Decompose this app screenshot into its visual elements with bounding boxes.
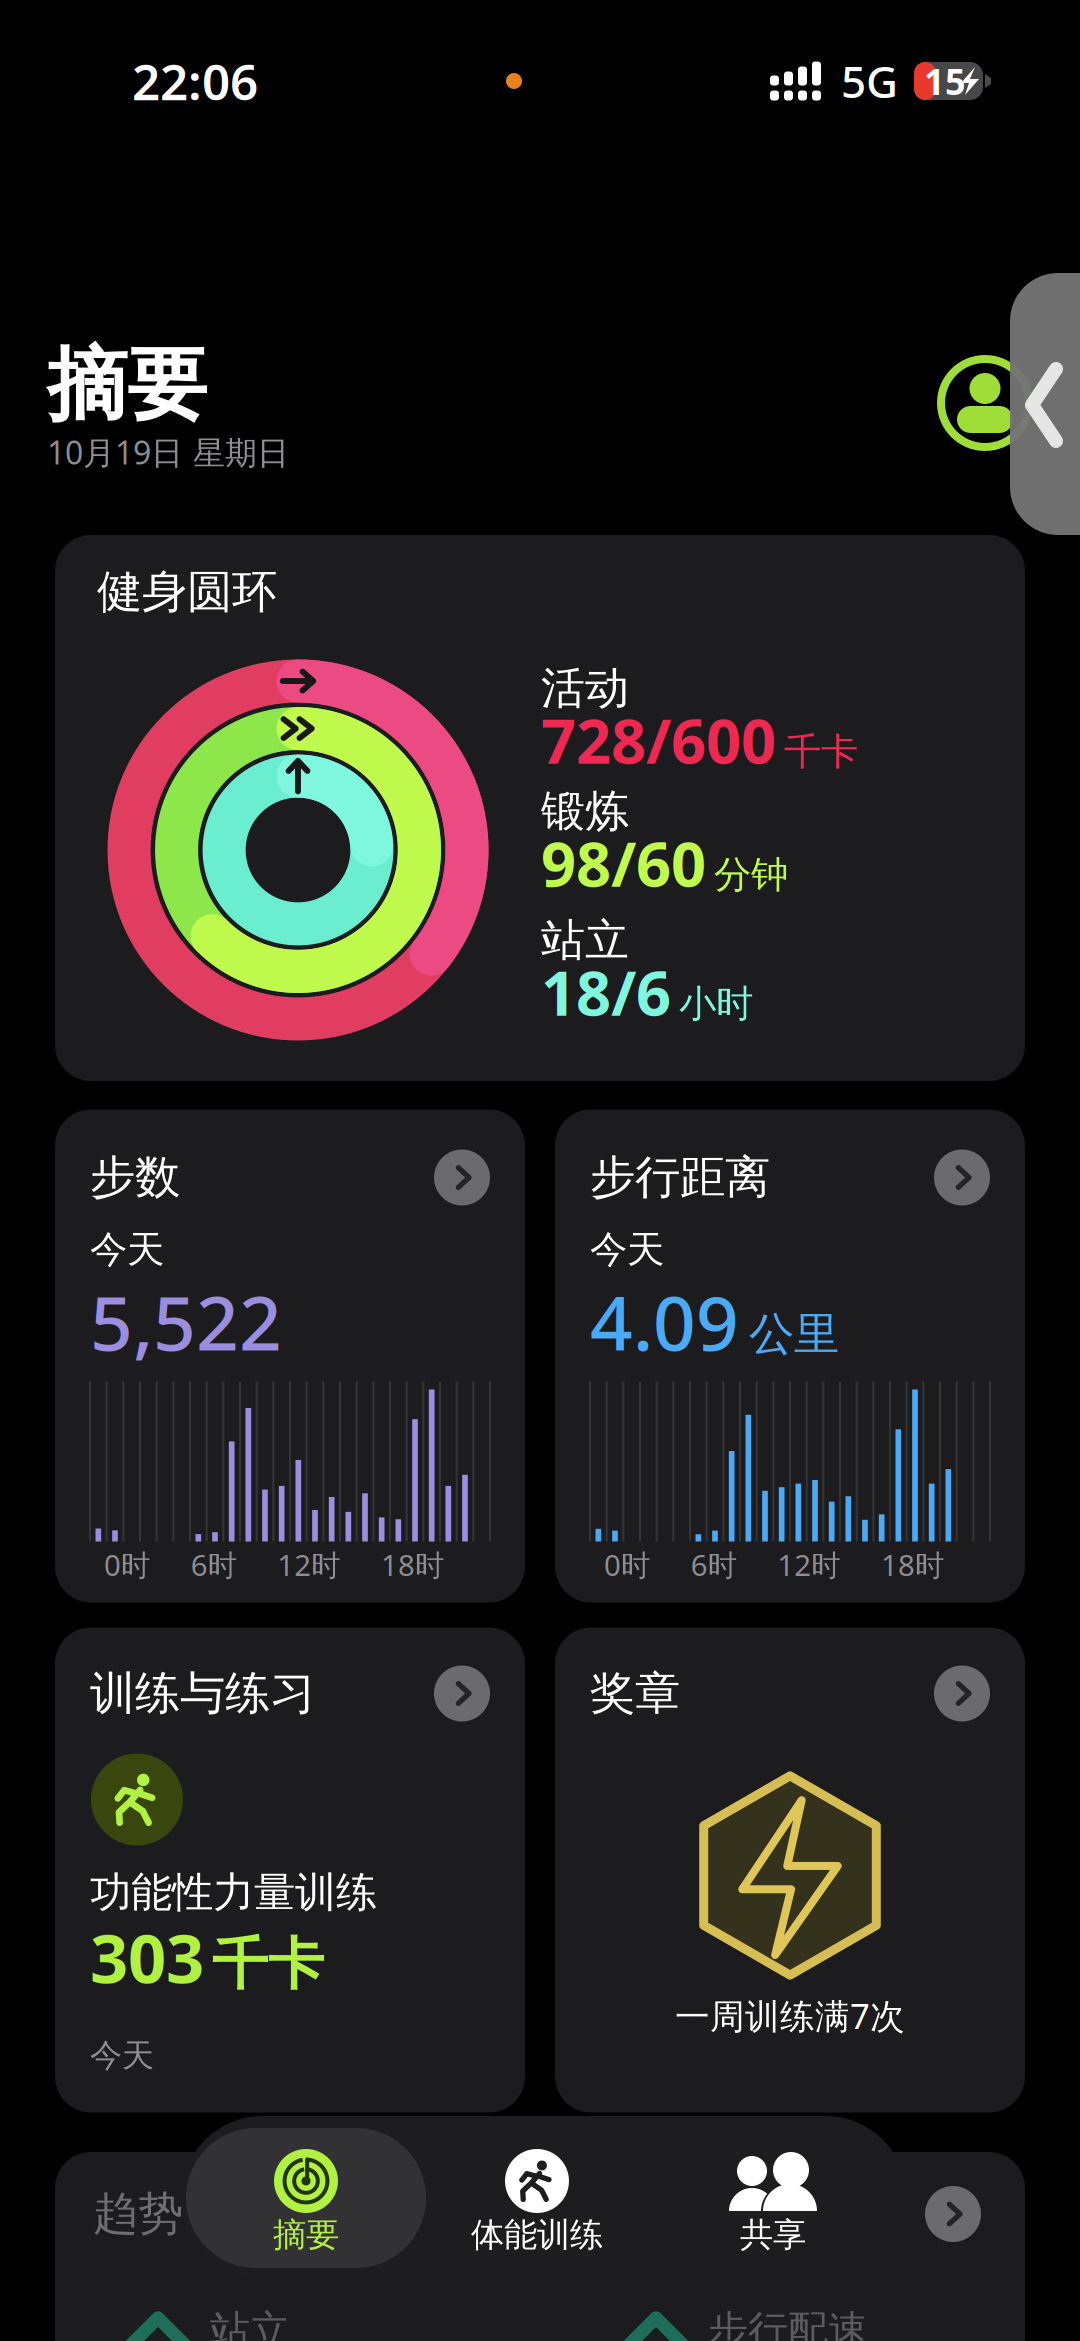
staticText: 0时 [104,1545,150,1584]
button[interactable]: 步行距离 [555,1109,1025,1602]
staticText: 奖章 [590,1666,680,1721]
staticText: 活动 [541,661,629,715]
staticText: 6时 [691,1545,737,1584]
staticText: 12时 [277,1545,340,1584]
staticText: 今天 [90,1227,164,1272]
button[interactable]: 摘要 [186,2128,426,2268]
staticText: 趋势 [93,2186,183,2242]
staticText: 功能性力量训练 [90,1867,377,1918]
staticText: 步行距离 [590,1150,770,1205]
staticText: 0时 [604,1545,650,1584]
button[interactable]: 个人资料 [941,359,1029,447]
button[interactable]: 奖章 [555,1627,1025,2112]
staticText: 步数 [90,1150,180,1205]
button[interactable]: 体能训练 [417,2128,657,2268]
staticText: 18时 [381,1545,444,1584]
staticText: 摘要 [273,2214,339,2255]
staticText: 6时 [191,1545,237,1584]
staticText: 公里 [749,1306,839,1362]
staticText: 303 [90,1913,204,2002]
staticText: 锻炼 [541,784,629,838]
staticText: 步行配速 [708,2306,868,2341]
staticText: 今天 [90,2036,154,2075]
staticText: 22:06 [132,48,258,114]
button[interactable]: 健身圆环 [55,535,1025,1081]
staticText: 体能训练 [471,2214,603,2255]
staticText: 摘要 [47,336,207,434]
staticText: 分钟 [714,852,788,898]
staticText: 站立 [541,913,629,967]
staticText: 18时 [881,1545,944,1584]
staticText: 今天 [590,1227,664,1272]
staticText: 共享 [740,2214,806,2255]
staticText: 健身圆环 [97,564,277,620]
button[interactable]: 共享 [653,2128,893,2268]
staticText: 训练与练习 [90,1666,315,1721]
staticText: 4.09 [590,1272,739,1371]
button[interactable]: 趋势 [55,2152,1025,2341]
staticText: 5G [841,52,898,110]
staticText: 728/600 [541,699,776,781]
staticText: 小时 [679,981,753,1027]
staticText: 5,522 [90,1272,282,1371]
staticText: 千卡 [212,1930,324,1999]
button[interactable]: 训练与练习 [55,1627,525,2112]
staticText: 一周训练满7次 [675,1992,905,2038]
staticText: 98/60 [541,822,706,904]
staticText: 12时 [777,1545,840,1584]
staticText: 站立 [210,2306,290,2341]
staticText: 15 [924,57,966,105]
staticText: 千卡 [784,729,858,775]
staticText: 18/6 [541,951,671,1033]
button[interactable]: 步数 [55,1109,525,1602]
staticText: 10月19日 星期日 [47,431,289,473]
